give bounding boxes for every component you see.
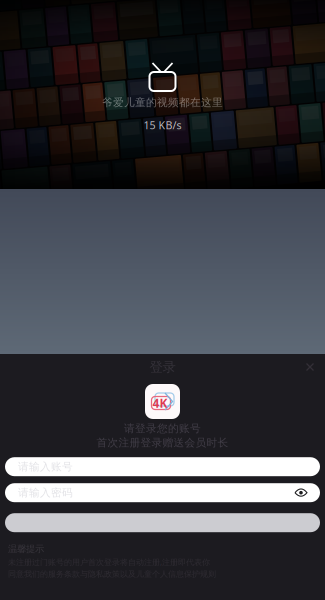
staticText: 爷爱儿童的视频都在这里	[102, 96, 223, 109]
staticText: 请输入账号	[18, 460, 73, 473]
staticText: 同意我们的服务条款与隐私政策以及儿童个人信息保护规则	[8, 569, 216, 579]
button[interactable]: Show password	[295, 488, 307, 498]
staticText: 登录	[149, 359, 175, 375]
staticText: 温馨提示	[8, 543, 44, 555]
button[interactable]	[5, 513, 320, 532]
staticText: 请登录您的账号	[124, 422, 201, 435]
button[interactable]: Close	[299, 356, 321, 378]
staticText: 未注册过门账号的用户首次登录将自动注册,注册即代表你	[8, 557, 210, 567]
staticText: 首次注册登录赠送会员时长	[96, 436, 228, 449]
staticText: 请输入密码	[18, 486, 73, 499]
staticText: 4K	[152, 395, 167, 411]
staticText: 15 KB/s	[143, 118, 181, 132]
